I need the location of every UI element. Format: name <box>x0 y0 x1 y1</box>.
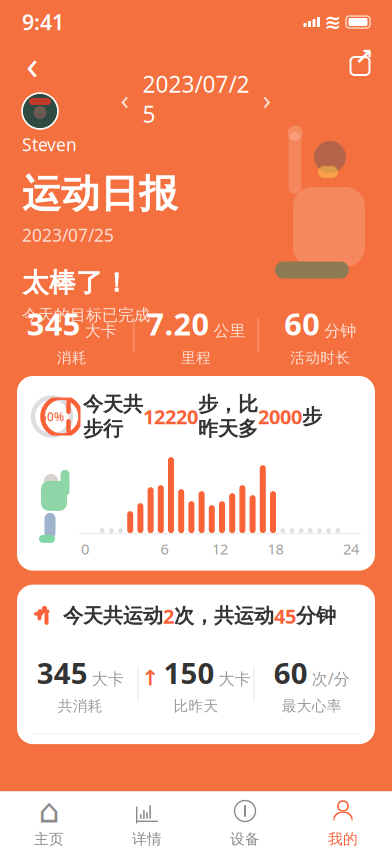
staticText: 设备 <box>230 830 260 848</box>
staticText: 我的 <box>328 830 358 848</box>
staticText: 详情 <box>132 830 162 848</box>
staticText: 大卡 <box>218 669 250 689</box>
staticText: 今天的目标已完成 <box>22 305 150 325</box>
button[interactable]: Previous day <box>108 84 142 114</box>
staticText: 12220 <box>143 403 198 430</box>
staticText: 共消耗 <box>58 697 103 715</box>
staticText: 2023/07/25 <box>142 69 249 129</box>
button[interactable]: 详情 <box>98 790 196 850</box>
staticText: 里程 <box>181 349 211 367</box>
staticText: ≋ <box>324 11 341 33</box>
staticText: 345 <box>27 303 81 344</box>
staticText: 公里 <box>213 321 245 341</box>
button[interactable]: Next day <box>250 84 284 114</box>
staticText: 150 <box>163 653 214 692</box>
staticText: 消耗 <box>57 349 87 367</box>
staticText: ‹ <box>26 37 38 90</box>
staticText: 次，共运动 <box>174 604 274 628</box>
staticText: 活动时长 <box>290 349 350 367</box>
staticText: 大卡 <box>85 321 117 341</box>
staticText: 18 <box>268 539 284 559</box>
staticText: 60 <box>284 303 320 344</box>
staticText: 50% <box>40 409 64 424</box>
button[interactable]: Back <box>12 44 52 84</box>
staticText: ⌂ <box>38 792 59 830</box>
staticText: 太棒了！ <box>22 267 130 299</box>
staticText: 主页 <box>34 830 64 848</box>
staticText: Steven <box>22 133 77 156</box>
staticText: 9:41 <box>22 8 64 36</box>
staticText: › <box>262 80 271 118</box>
staticText: 步，比昨天多 <box>198 392 258 441</box>
button[interactable]: ⌂ <box>0 790 98 850</box>
staticText: ‹ <box>120 80 129 118</box>
staticText: 2 <box>163 603 174 629</box>
staticText: 2023/07/25 <box>22 223 114 246</box>
staticText: 45 <box>274 603 296 629</box>
staticText: ↗ <box>354 44 373 70</box>
staticText: 0 <box>81 539 89 559</box>
staticText: 今天共运动 <box>63 604 163 628</box>
staticText: 今天共步行 <box>83 392 143 441</box>
button[interactable]: 我的 <box>294 790 392 850</box>
staticText: ↑ <box>141 666 159 690</box>
staticText: 2000 <box>258 403 302 430</box>
button[interactable]: Steven <box>22 93 77 156</box>
staticText: 345 <box>37 653 88 692</box>
staticText: 步 <box>302 404 322 429</box>
staticText: 6 <box>160 539 168 559</box>
staticText: 大卡 <box>92 669 124 689</box>
button[interactable]: 50% <box>17 376 375 571</box>
staticText: 最大心率 <box>282 697 342 715</box>
staticText: 分钟 <box>324 321 356 341</box>
staticText: 60 <box>274 653 308 692</box>
button[interactable]: Share <box>340 44 380 84</box>
button[interactable]: 设备 <box>196 790 294 850</box>
staticText: 比昨天 <box>173 697 218 715</box>
button[interactable]: 今天共运动 <box>17 585 375 744</box>
staticText: 分钟 <box>296 604 336 628</box>
staticText: 12 <box>212 539 228 559</box>
staticText: 运动日报 <box>22 170 178 217</box>
staticText: 7.20 <box>146 303 209 344</box>
staticText: 次/分 <box>312 668 350 689</box>
staticText: 24 <box>343 539 359 559</box>
